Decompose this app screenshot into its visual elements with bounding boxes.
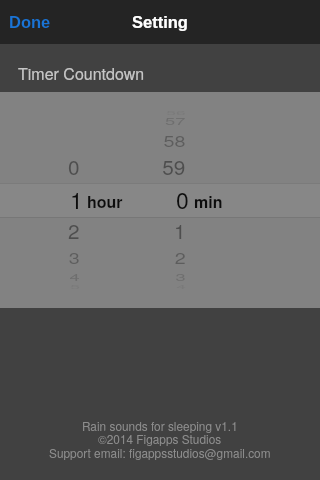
staticText: 3 <box>176 270 186 284</box>
staticText: 58 <box>163 129 186 151</box>
staticText: hour <box>87 190 123 213</box>
staticText: Timer Countdown <box>18 62 145 85</box>
staticText: 1 <box>174 216 186 244</box>
staticText: 0 <box>176 183 189 216</box>
staticText: 0 <box>68 152 80 180</box>
staticText: 2 <box>68 216 80 244</box>
staticText: Done <box>9 13 51 31</box>
staticText: 57 <box>165 114 186 128</box>
staticText: 3 <box>69 246 80 268</box>
staticText: Setting <box>132 13 188 31</box>
staticText: Rain sounds for sleeping v1.1 <box>82 417 238 434</box>
button[interactable]: Done <box>0 3 60 41</box>
staticText: 59 <box>162 152 186 180</box>
staticText: Support email: figappsstudios@gmail.com <box>49 444 271 461</box>
staticText: min <box>194 190 223 213</box>
staticText: 4 <box>70 270 80 284</box>
staticText: 2 <box>175 246 186 268</box>
staticText: 1 <box>70 183 83 216</box>
staticText: ©2014 Figapps Studios <box>98 430 222 447</box>
